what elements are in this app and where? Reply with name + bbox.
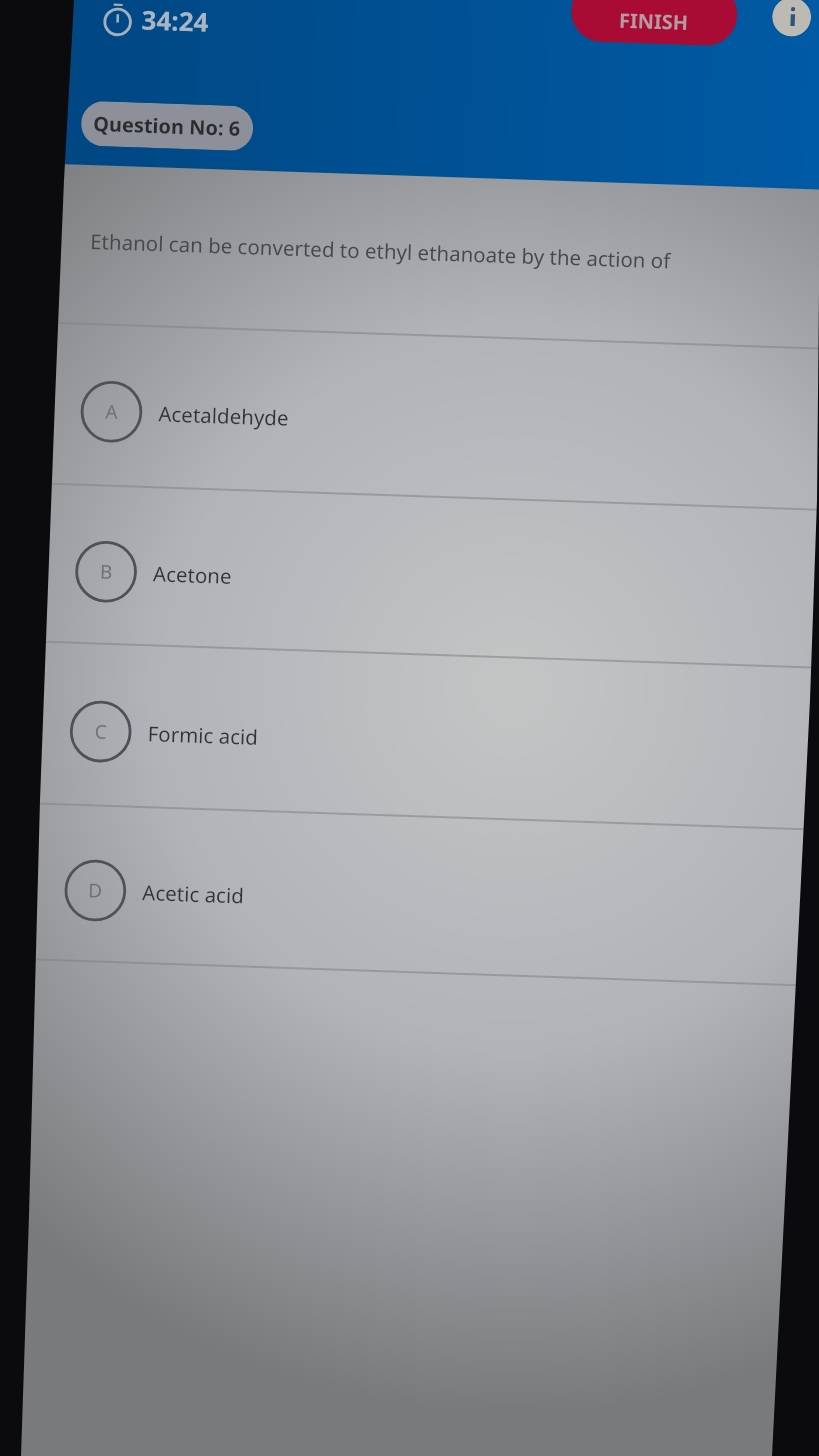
- staticText: Acetaldehyde: [158, 399, 290, 432]
- staticText: Question No: 6: [93, 110, 241, 142]
- button[interactable]: C: [0, 649, 819, 839]
- staticText: FINISH: [618, 7, 689, 36]
- staticText: Acetone: [153, 559, 232, 590]
- button[interactable]: FINISH: [570, 0, 738, 47]
- staticText: Ethanol can be converted to ethyl ethano…: [90, 227, 671, 275]
- staticText: A: [105, 399, 119, 425]
- staticText: D: [88, 877, 103, 904]
- button[interactable]: Info: [771, 0, 812, 37]
- staticText: Formic acid: [147, 719, 259, 751]
- button[interactable]: A: [8, 329, 819, 519]
- staticText: Acetic acid: [142, 878, 245, 909]
- button[interactable]: D: [0, 808, 819, 998]
- staticText: C: [94, 718, 108, 745]
- staticText: 34:24: [141, 2, 209, 39]
- staticText: B: [100, 558, 114, 585]
- button[interactable]: Question No: 6: [80, 101, 254, 151]
- button[interactable]: B: [2, 489, 819, 679]
